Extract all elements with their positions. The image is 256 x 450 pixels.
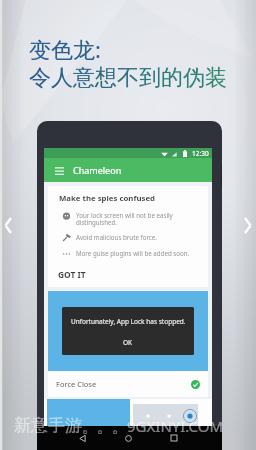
button[interactable]: Previous: [0, 212, 20, 238]
staticText: Force Close: [56, 379, 97, 389]
staticText: 新意手游: [14, 415, 82, 436]
button[interactable]: OK: [123, 338, 133, 347]
staticText: GOT IT: [58, 269, 86, 280]
staticText: 变色龙:: [29, 34, 101, 64]
staticText: OK: [123, 338, 133, 347]
staticText: 12:30: [192, 149, 209, 158]
staticText: Your lock screen will not be easily dist…: [76, 211, 173, 227]
staticText: Chameleon: [73, 164, 122, 176]
button[interactable]: Next: [236, 212, 256, 238]
button[interactable]: Back: [74, 430, 90, 446]
button[interactable]: GOT IT: [62, 269, 90, 280]
button[interactable]: Home: [120, 430, 136, 446]
staticText: 令人意想不到的伪装: [29, 64, 227, 92]
staticText: More guise plugins will be added soon.: [76, 249, 190, 257]
staticText: 。。。9GXINYI.COM: [82, 416, 224, 436]
staticText: Avoid malicious brute force.: [76, 233, 157, 241]
staticText: Make the spies confused: [59, 193, 155, 204]
button[interactable]: Force Close: [48, 371, 208, 397]
button[interactable]: Menu: [55, 158, 64, 182]
staticText: Unfortunately, App Lock has stopped.: [71, 317, 186, 326]
button[interactable]: Recents: [166, 430, 182, 446]
